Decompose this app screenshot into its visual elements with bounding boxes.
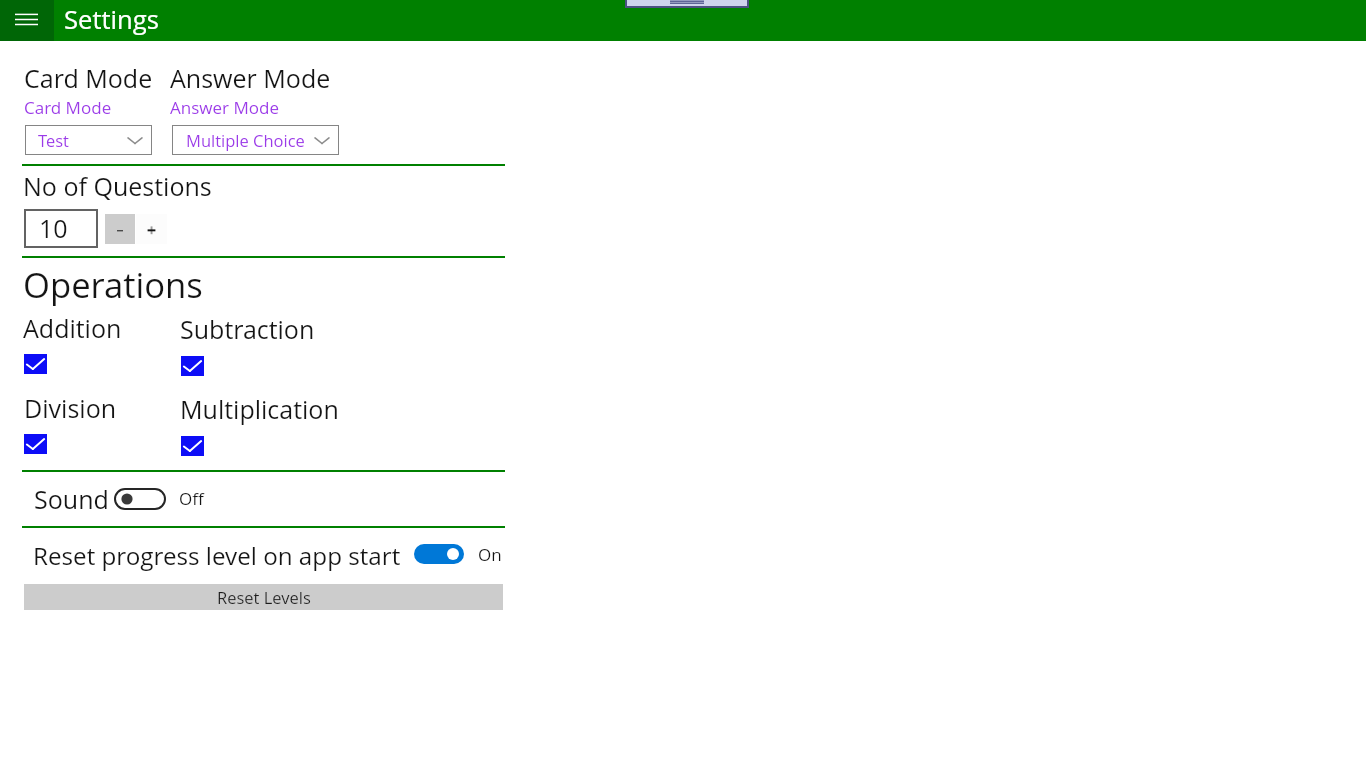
button[interactable]: Checked bbox=[24, 354, 47, 374]
staticText: Subtraction bbox=[180, 312, 315, 346]
staticText: Card Mode bbox=[24, 96, 112, 119]
button[interactable]: 10 bbox=[24, 209, 98, 248]
staticText: Test bbox=[38, 129, 69, 151]
button[interactable]: Switch on bbox=[414, 544, 464, 564]
staticText: Addition bbox=[23, 311, 122, 345]
staticText: Off bbox=[179, 487, 204, 510]
staticText: Multiple Choice bbox=[186, 129, 305, 151]
button[interactable]: Checked bbox=[24, 434, 47, 454]
staticText: No of Questions bbox=[23, 169, 212, 203]
staticText: Sound bbox=[34, 482, 109, 516]
button[interactable]: Menu bbox=[0, 0, 54, 41]
staticText: 10 bbox=[39, 211, 68, 245]
staticText: Settings bbox=[64, 2, 159, 37]
staticText: Multiplication bbox=[180, 392, 339, 426]
staticText: On bbox=[478, 543, 502, 566]
button[interactable]: Checked bbox=[181, 356, 204, 376]
staticText: Operations bbox=[23, 261, 203, 308]
staticText: Answer Mode bbox=[170, 61, 331, 95]
staticText: Reset Levels bbox=[217, 586, 311, 608]
button[interactable]: Increase bbox=[136, 214, 167, 244]
button[interactable]: Multiple Choice bbox=[172, 125, 339, 155]
button[interactable]: Test bbox=[25, 125, 152, 155]
staticText: Answer Mode bbox=[170, 96, 279, 119]
button[interactable]: Reset Levels bbox=[24, 584, 503, 610]
button[interactable]: Checked bbox=[181, 436, 204, 456]
button[interactable]: Switch off bbox=[115, 489, 165, 509]
staticText: Reset progress level on app start bbox=[33, 539, 401, 572]
staticText: Card Mode bbox=[24, 61, 153, 95]
staticText: Division bbox=[24, 391, 117, 425]
button[interactable]: Decrease bbox=[105, 214, 135, 244]
